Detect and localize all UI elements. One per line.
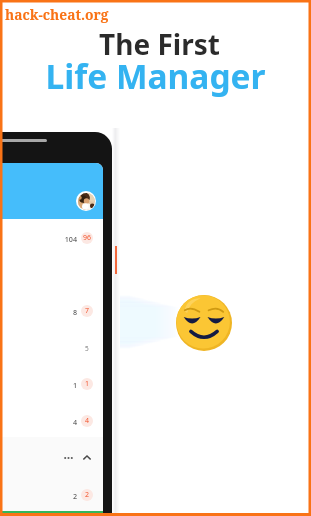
button[interactable]: 2	[0, 482, 103, 508]
staticText: 1	[85, 379, 90, 389]
button[interactable]: Profile	[76, 191, 96, 211]
staticText: 7	[85, 306, 90, 316]
staticText: Life Manager	[0, 53, 311, 99]
staticText: The First	[4, 25, 311, 63]
button[interactable]: Collapse	[83, 451, 91, 465]
staticText: 8	[72, 307, 77, 317]
button[interactable]: 8	[0, 298, 103, 324]
staticText: 2	[72, 491, 77, 501]
staticText: 5	[85, 344, 89, 353]
staticText: hack-cheat.org	[5, 5, 109, 24]
button[interactable]: 104	[0, 225, 103, 251]
button[interactable]: 1	[0, 371, 103, 397]
staticText: 4	[72, 417, 77, 427]
button[interactable]: 5	[0, 334, 103, 360]
button[interactable]: 4	[0, 408, 103, 434]
staticText: 4	[85, 416, 90, 426]
staticText: 1	[72, 380, 77, 390]
staticText: 96	[83, 233, 92, 243]
button[interactable]: Profile	[0, 163, 103, 219]
button[interactable]: More options	[64, 451, 73, 465]
staticText: 2	[85, 490, 90, 500]
staticText: 104	[64, 234, 77, 244]
